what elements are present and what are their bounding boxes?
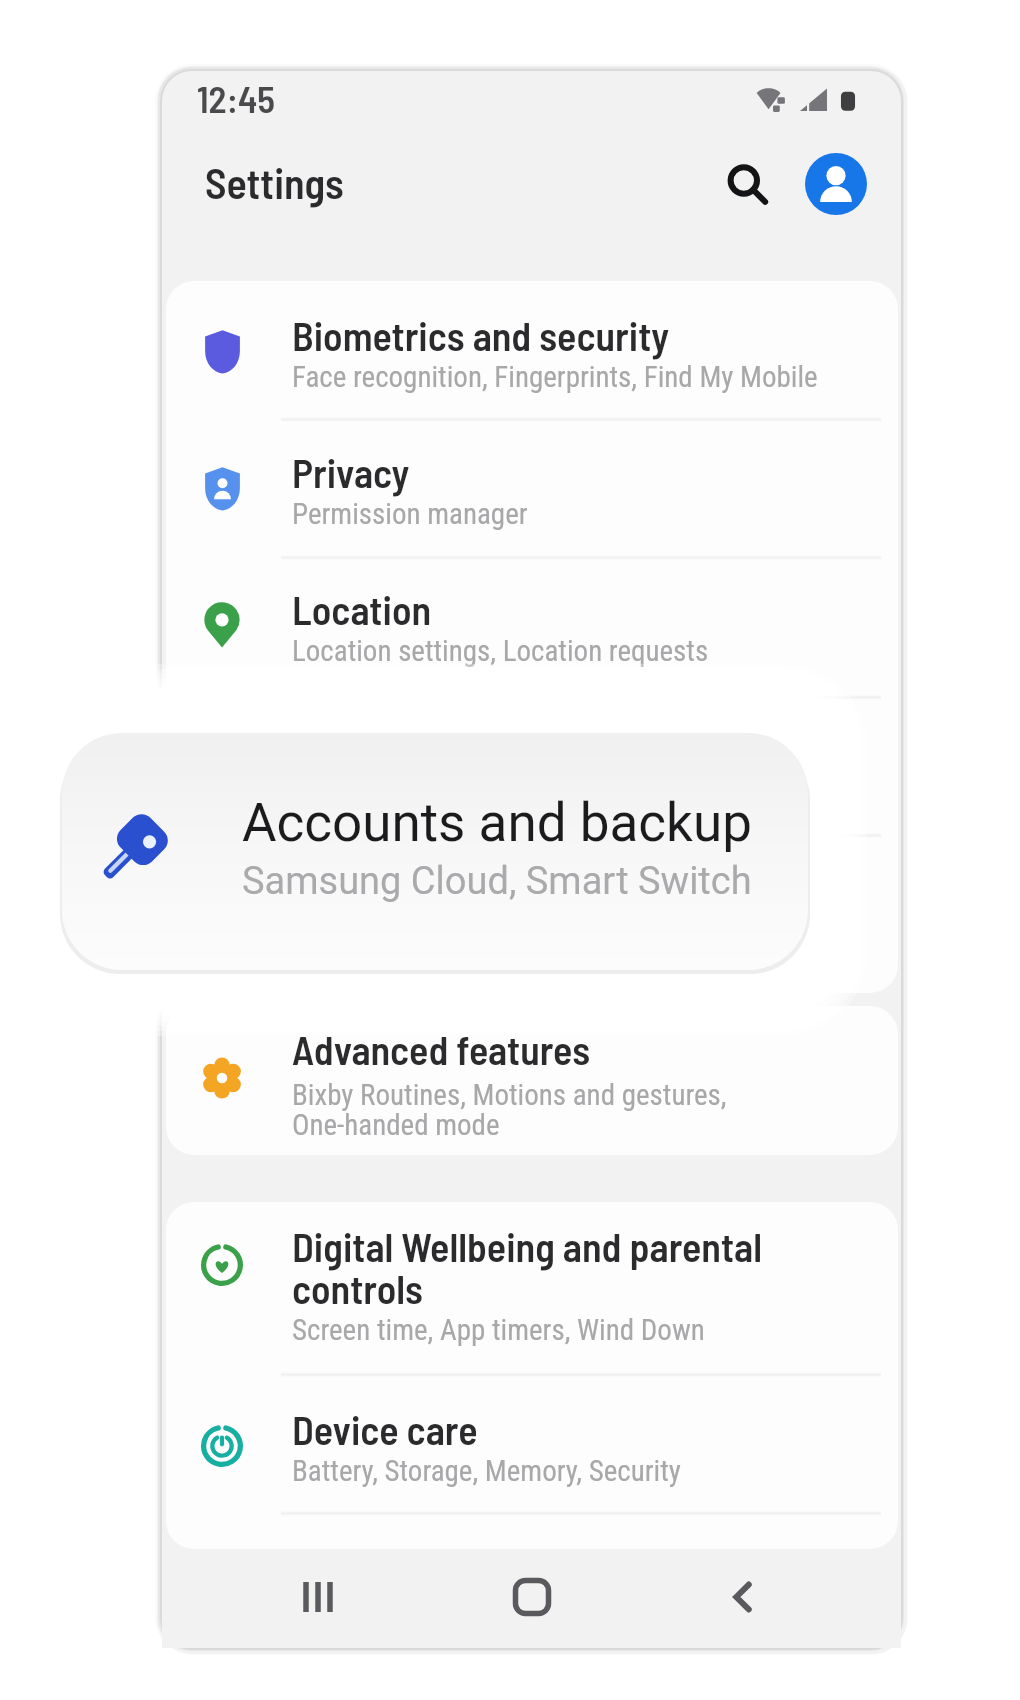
staticText: Battery, Storage, Memory, Security bbox=[292, 1454, 681, 1488]
staticText: Apps bbox=[292, 862, 373, 910]
button[interactable] bbox=[165, 833, 901, 951]
button[interactable]: Account bbox=[805, 153, 867, 215]
button[interactable] bbox=[165, 996, 901, 1114]
button[interactable]: Home bbox=[484, 1549, 580, 1645]
button[interactable] bbox=[62, 733, 808, 970]
staticText: Digital Wellbeing and parental controls bbox=[292, 1222, 762, 1312]
staticText: Biometrics and security bbox=[292, 311, 670, 359]
staticText: 12:45 bbox=[197, 76, 275, 120]
button[interactable] bbox=[165, 695, 901, 813]
button[interactable] bbox=[165, 556, 901, 674]
staticText: Device care bbox=[292, 1405, 478, 1453]
button[interactable] bbox=[165, 419, 901, 537]
staticText: Permission manager bbox=[292, 497, 528, 531]
button[interactable]: Search bbox=[714, 152, 778, 216]
button[interactable] bbox=[165, 1376, 901, 1494]
staticText: Privacy bbox=[292, 448, 410, 496]
staticText: Accounts and backup bbox=[242, 792, 752, 854]
staticText: Advanced features bbox=[292, 1025, 591, 1073]
button[interactable] bbox=[165, 1193, 901, 1311]
button[interactable]: Back bbox=[695, 1549, 791, 1645]
staticText: Bixby Routines, Motions and gestures, On… bbox=[292, 1078, 727, 1142]
staticText: Location bbox=[292, 585, 432, 633]
staticText: Accounts and backup bbox=[292, 724, 633, 772]
button[interactable] bbox=[165, 282, 901, 400]
staticText: Location settings, Location requests bbox=[292, 634, 709, 668]
staticText: Samsung Cloud, Smart Switch bbox=[242, 859, 752, 904]
staticText: Samsung Cloud, Smart Switch bbox=[292, 773, 636, 807]
staticText: Settings bbox=[205, 157, 344, 207]
staticText: Face recognition, Fingerprints, Find My … bbox=[292, 360, 818, 394]
button[interactable]: Recents bbox=[270, 1549, 366, 1645]
staticText: Screen time, App timers, Wind Down bbox=[292, 1313, 705, 1347]
